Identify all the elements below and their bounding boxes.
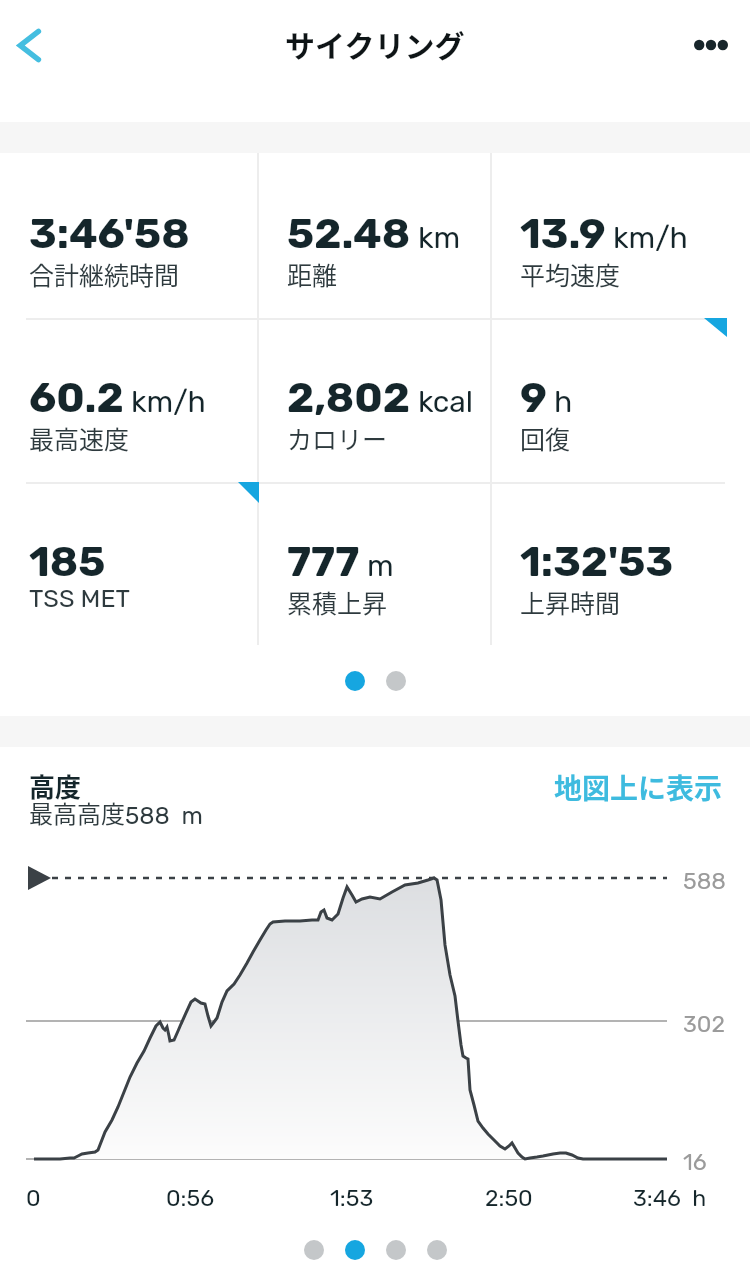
button[interactable]: 185 [0, 481, 258, 645]
button[interactable]: Page 1 [345, 671, 365, 691]
staticText: 累積上昇 [287, 584, 388, 620]
staticText: h [554, 384, 573, 420]
button[interactable]: Page 1 [304, 1240, 324, 1260]
staticText: 1:53 [330, 1184, 374, 1211]
staticText: TSS MET [29, 584, 131, 614]
staticText: 588 [683, 867, 726, 894]
staticText: 1:32'53 [520, 537, 674, 587]
button[interactable]: 1:32'53 [491, 481, 750, 645]
staticText: 588 m [125, 802, 203, 830]
staticText: 52.48 [287, 209, 411, 259]
button[interactable]: 777 [258, 481, 491, 645]
staticText: 302 [683, 1010, 725, 1037]
button[interactable]: 13.9 [491, 153, 750, 317]
button[interactable]: Page 2 [345, 1240, 365, 1260]
staticText: 2,802 [287, 373, 411, 423]
button[interactable]: 2,802 [258, 317, 491, 481]
staticText: 高度 [29, 767, 82, 805]
staticText: km/h [131, 384, 206, 420]
staticText: kcal [418, 384, 474, 420]
staticText: 9 [520, 373, 547, 423]
staticText: 0 [26, 1184, 41, 1211]
staticText: 3:46 h [633, 1184, 707, 1211]
staticText: カロリー [287, 420, 388, 456]
button[interactable]: 9 [491, 317, 750, 481]
button[interactable]: 3:46'58 [0, 153, 258, 317]
staticText: 上昇時間 [520, 584, 621, 620]
button[interactable]: Back [0, 0, 58, 90]
staticText: 185 [29, 537, 106, 587]
button[interactable]: 52.48 [258, 153, 491, 317]
staticText: 最高速度 [29, 420, 130, 456]
button[interactable]: Page 4 [427, 1240, 447, 1260]
staticText: km [418, 220, 461, 256]
staticText: 777 [287, 537, 360, 587]
staticText: 3:46'58 [29, 209, 190, 259]
staticText: 0:56 [166, 1184, 215, 1211]
button[interactable]: Page 2 [386, 671, 406, 691]
staticText: 回復 [520, 420, 571, 456]
staticText: 合計継続時間 [29, 256, 180, 292]
staticText: 60.2 [29, 373, 124, 423]
staticText: km/h [613, 220, 688, 256]
staticText: 距離 [287, 256, 338, 292]
button[interactable]: 60.2 [0, 317, 258, 481]
staticText: 16 [683, 1148, 707, 1175]
button[interactable]: Page 3 [386, 1240, 406, 1260]
button[interactable]: 地図上に表示 [554, 767, 723, 808]
staticText: 13.9 [520, 209, 606, 259]
staticText: 最高高度 [29, 795, 125, 830]
button[interactable]: More options [672, 0, 750, 90]
staticText: 2:50 [485, 1184, 533, 1211]
staticText: m [367, 548, 394, 584]
staticText: サイクリング [285, 22, 465, 65]
staticText: 平均速度 [520, 256, 621, 292]
